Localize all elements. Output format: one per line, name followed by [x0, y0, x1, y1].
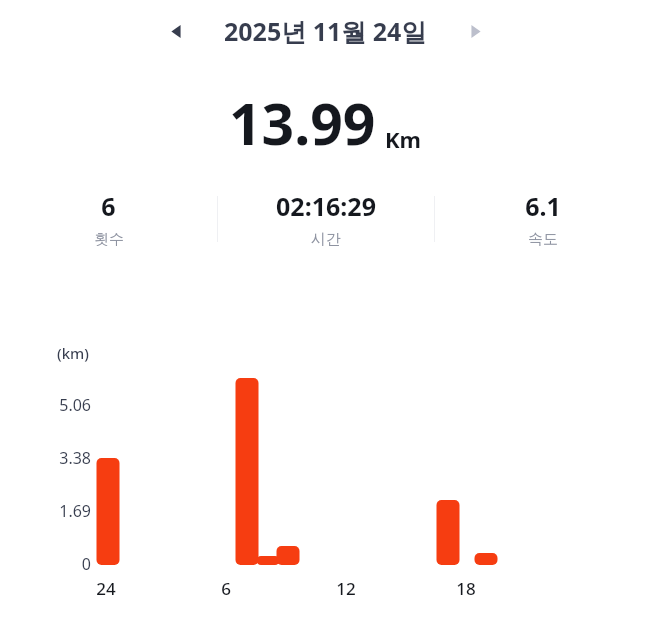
staticText: 3.38 [59, 447, 91, 469]
staticText: 6 [101, 189, 116, 223]
staticText: 12 [336, 577, 356, 600]
staticText: 13.99 [229, 84, 376, 162]
staticText: 24 [96, 577, 116, 600]
staticText: 18 [456, 577, 476, 600]
staticText: 2025년 11월 24일 [224, 14, 427, 48]
button[interactable]: 6.1 [435, 188, 651, 250]
staticText: (km) [57, 343, 89, 363]
button[interactable]: 6 [0, 188, 217, 250]
staticText: 5.06 [59, 394, 91, 416]
button[interactable]: Next day [453, 9, 497, 53]
staticText: 6.1 [525, 189, 561, 223]
button[interactable]: 2025년 11월 24일 [220, 8, 431, 54]
staticText: 시간 [311, 230, 341, 249]
staticText: 속도 [528, 230, 558, 249]
staticText: 횟수 [94, 230, 124, 249]
staticText: 6 [221, 577, 231, 600]
staticText: 02:16:29 [276, 189, 376, 223]
button[interactable]: Previous day [154, 9, 198, 53]
staticText: Km [385, 124, 422, 154]
staticText: 1.69 [59, 500, 91, 522]
staticText: 0 [81, 553, 91, 575]
button[interactable]: 02:16:29 [218, 188, 434, 250]
